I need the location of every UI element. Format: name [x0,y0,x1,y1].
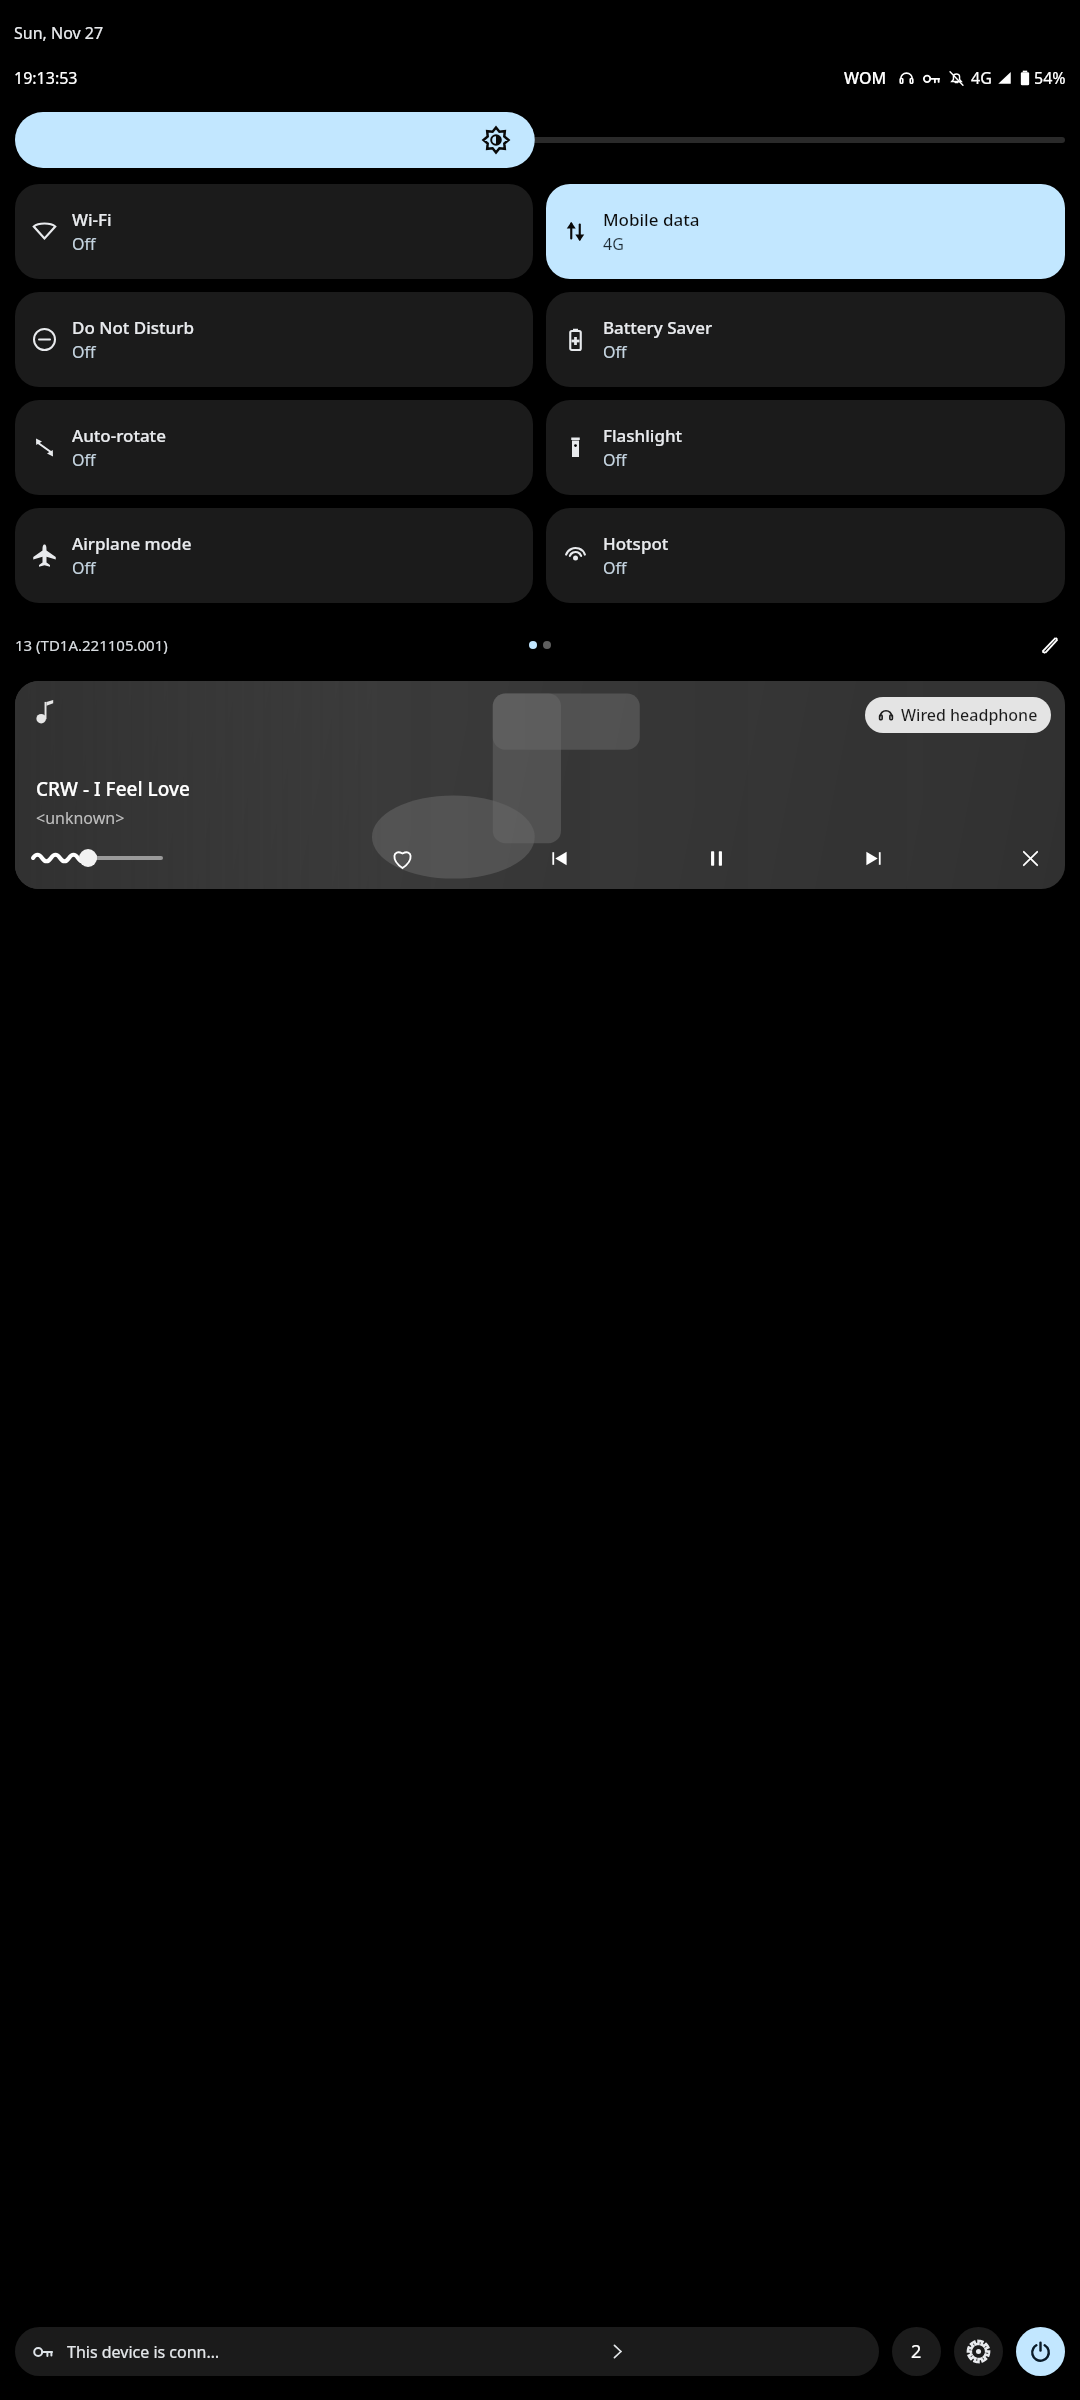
staticText: Airplane mode [72,532,192,555]
staticText: Off [603,341,627,363]
staticText: Off [72,233,96,255]
staticText: Off [72,557,96,579]
staticText: 4G [603,233,624,255]
button[interactable]: Next [856,841,890,875]
staticText: Flashlight [603,424,683,447]
button[interactable]: Auto-rotate [15,400,533,495]
staticText: Hotspot [603,532,669,555]
staticText: Battery Saver [603,316,713,339]
button[interactable]: Airplane mode [15,508,533,603]
button[interactable]: Edit tiles [1033,629,1065,661]
button[interactable]: Close [1013,841,1047,875]
button[interactable]: Brightness [15,112,1065,168]
staticText: Sun, Nov 27 [14,22,104,44]
staticText: Wired headphone [901,704,1038,726]
staticText: 54% [1034,67,1066,89]
staticText: 2 [911,2339,922,2364]
button[interactable]: Notifications: 2 [892,2327,941,2376]
button[interactable]: Wired headphone [15,681,1065,889]
button[interactable]: Flashlight [546,400,1065,495]
staticText: Auto-rotate [72,424,166,447]
staticText: CRW - I Feel Love [36,776,190,802]
staticText: Do Not Disturb [72,316,194,339]
button[interactable]: Wired headphone [865,697,1051,733]
button[interactable]: Mobile data [546,184,1065,279]
button[interactable]: Hotspot [546,508,1065,603]
staticText: This device is conn… [67,2341,220,2363]
button[interactable]: Power [1016,2327,1065,2376]
button[interactable]: Do Not Disturb [15,292,533,387]
button[interactable]: Pause [699,841,733,875]
button[interactable]: Favorite [385,841,419,875]
staticText: Off [603,449,627,471]
staticText: 4G [971,67,992,89]
staticText: WOM [844,67,887,89]
button[interactable]: This device is conn… [15,2327,879,2376]
staticText: 19:13:53 [14,67,78,89]
staticText: Off [72,341,96,363]
button[interactable]: Settings [954,2327,1003,2376]
staticText: Off [603,557,627,579]
button[interactable]: Wi-Fi [15,184,533,279]
button[interactable]: Previous [542,841,576,875]
staticText: Wi-Fi [72,208,112,231]
staticText: Mobile data [603,208,700,231]
button[interactable]: Battery Saver [546,292,1065,387]
staticText: 13 (TD1A.221105.001) [15,635,168,655]
staticText: <unknown> [36,807,125,829]
staticText: Off [72,449,96,471]
